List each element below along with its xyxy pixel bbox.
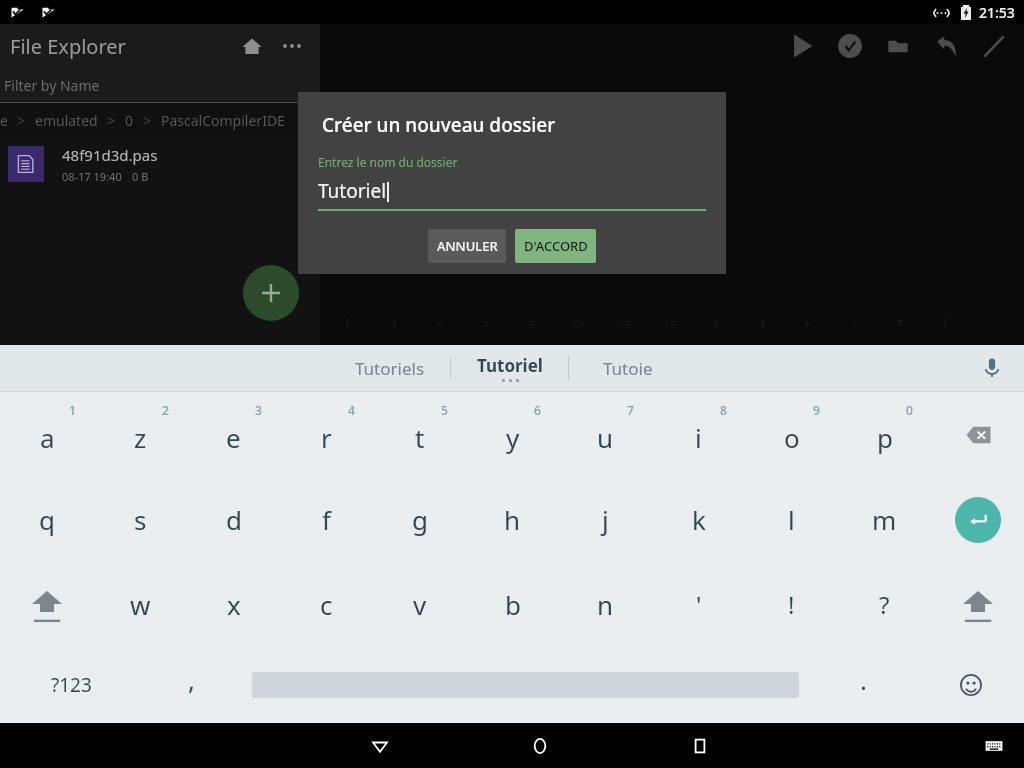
button[interactable]: Back: [300, 723, 460, 768]
button[interactable]: f: [280, 477, 373, 562]
button[interactable]: v: [373, 562, 466, 647]
staticText: f: [322, 502, 331, 537]
button[interactable]: 6: [466, 392, 559, 477]
button[interactable]: k: [652, 477, 745, 562]
button[interactable]: x: [187, 562, 280, 647]
button[interactable]: l: [745, 477, 838, 562]
staticText: <=: [617, 314, 632, 332]
button[interactable]: 3: [187, 392, 280, 477]
staticText: 2: [162, 402, 169, 418]
button[interactable]: b: [466, 562, 559, 647]
button[interactable]: .: [810, 647, 917, 723]
button[interactable]: Keyboard: [964, 723, 1024, 768]
staticText: z: [134, 420, 147, 455]
button[interactable]: 0: [838, 392, 931, 477]
staticText: File Explorer: [10, 33, 126, 60]
button[interactable]: Open folder: [874, 24, 922, 68]
button[interactable]: Home: [460, 723, 620, 768]
button[interactable]: m: [838, 477, 931, 562]
button[interactable]: More options: [272, 26, 312, 66]
button[interactable]: n: [559, 562, 652, 647]
button[interactable]: Undo: [922, 24, 970, 68]
staticText: y: [506, 420, 520, 455]
staticText: Entrez le nom du dossier: [318, 154, 458, 170]
button[interactable]: Backspace: [931, 392, 1024, 477]
staticText: ): [392, 314, 397, 332]
button[interactable]: Enter: [931, 477, 1024, 562]
button[interactable]: c: [280, 562, 373, 647]
button[interactable]: ': [652, 562, 745, 647]
button[interactable]: D'ACCORD: [515, 229, 596, 263]
button[interactable]: 9: [745, 392, 838, 477]
button[interactable]: ANNULER: [428, 229, 506, 263]
button[interactable]: Shift: [0, 562, 94, 647]
button[interactable]: Run: [778, 24, 826, 68]
staticText: >: [17, 111, 26, 130]
button[interactable]: h: [466, 477, 559, 562]
button[interactable]: ,: [142, 647, 240, 723]
staticText: r: [321, 420, 332, 455]
button[interactable]: q: [0, 477, 94, 562]
staticText: -: [852, 314, 857, 332]
staticText: 0: [906, 402, 913, 418]
button[interactable]: Tutoriel: [451, 345, 568, 391]
staticText: a: [40, 420, 55, 455]
staticText: i: [695, 420, 702, 455]
staticText: 48f91d3d.pas: [62, 145, 158, 165]
staticText: Tutoriel: [318, 178, 387, 204]
staticText: !: [788, 588, 795, 621]
button[interactable]: ?: [838, 562, 931, 647]
button[interactable]: w: [94, 562, 187, 647]
staticText: k: [692, 502, 706, 537]
staticText: Tutoriels: [355, 357, 425, 380]
staticText: 0 B: [132, 169, 149, 184]
button[interactable]: 8: [652, 392, 745, 477]
button[interactable]: 1: [0, 392, 94, 477]
button[interactable]: New folder: [243, 265, 299, 321]
button[interactable]: Voice input: [960, 345, 1024, 391]
button[interactable]: 5: [373, 392, 466, 477]
button[interactable]: Tutoie: [569, 345, 687, 391]
button[interactable]: !: [745, 562, 838, 647]
button[interactable]: Space: [240, 647, 810, 723]
button[interactable]: Edit: [970, 24, 1018, 68]
button[interactable]: ?123: [0, 647, 142, 723]
staticText: e: [0, 111, 8, 130]
button[interactable]: Check: [826, 24, 874, 68]
button[interactable]: 48f91d3d.pas: [0, 138, 320, 190]
button[interactable]: Home: [232, 26, 272, 66]
button[interactable]: Shift: [931, 562, 1024, 647]
button[interactable]: 4: [280, 392, 373, 477]
button[interactable]: Emoji: [917, 647, 1024, 723]
staticText: *: [896, 314, 904, 332]
staticText: t: [415, 420, 425, 455]
button[interactable]: j: [559, 477, 652, 562]
button[interactable]: 2: [94, 392, 187, 477]
button[interactable]: 7: [559, 392, 652, 477]
staticText: >: [107, 111, 116, 130]
button[interactable]: Recents: [620, 723, 780, 768]
staticText: .: [860, 662, 867, 697]
staticText: 4: [348, 402, 355, 418]
staticText: 21:53: [979, 3, 1015, 22]
button[interactable]: g: [373, 477, 466, 562]
button[interactable]: Tutoriels: [330, 345, 450, 391]
button[interactable]: d: [187, 477, 280, 562]
button[interactable]: s: [94, 477, 187, 562]
staticText: 8: [720, 402, 727, 418]
